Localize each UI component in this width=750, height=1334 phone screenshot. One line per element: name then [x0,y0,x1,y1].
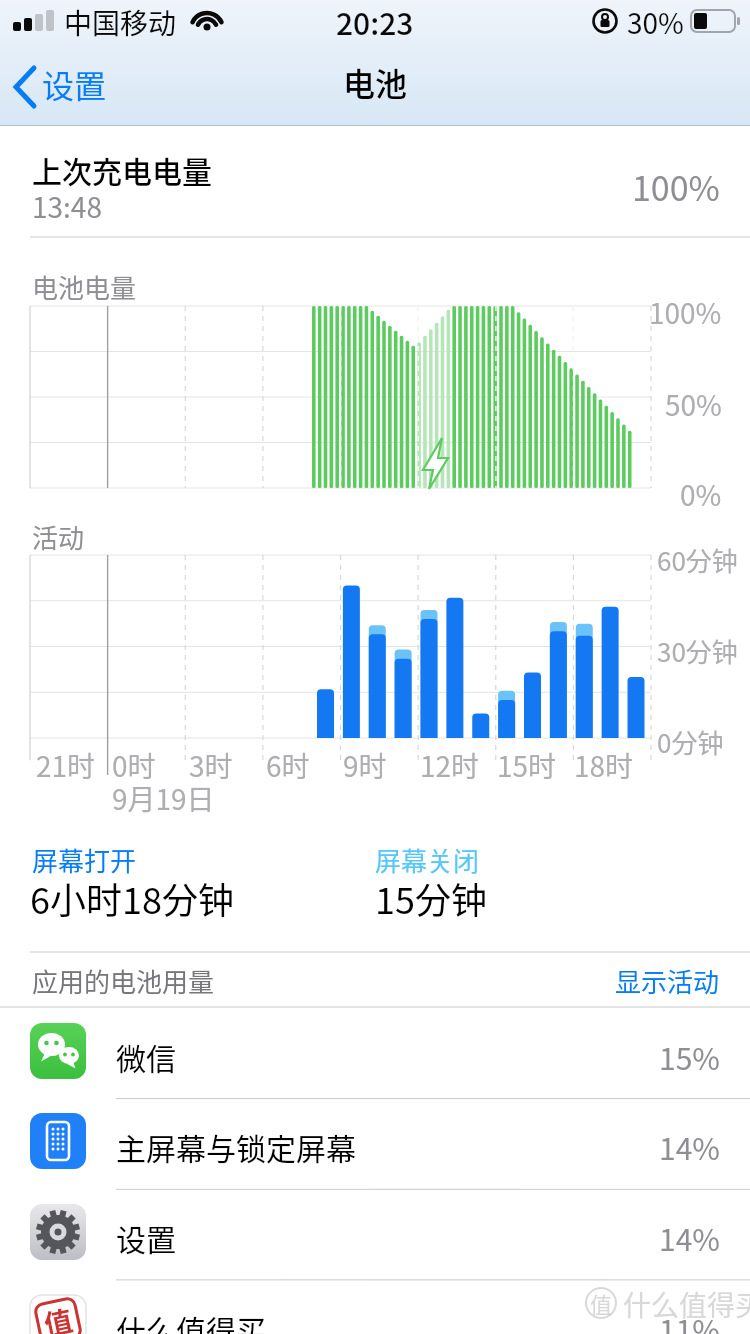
staticText: 什么值得买 [116,1307,266,1334]
button[interactable]: 值 [0,1280,750,1334]
button[interactable]: 设置 [42,61,107,107]
staticText: 12时 [420,745,480,786]
staticText: 18时 [574,745,634,786]
staticText: 100% [632,162,720,211]
staticText: 设置 [42,61,107,107]
staticText: 100% [649,292,722,333]
staticText: 14% [659,1125,720,1168]
staticText: 30分钟 [657,632,738,670]
staticText: 0分钟 [657,723,724,761]
staticText: 电池 [343,59,408,105]
staticText: 0时 [112,745,156,786]
staticText: 15分钟 [375,872,487,924]
staticText: 微信 [116,1035,176,1078]
staticText: 30% [627,2,684,43]
staticText: 50% [665,384,722,425]
staticText: 13:48 [32,186,102,227]
staticText: 14% [659,1216,720,1259]
staticText: 设置 [116,1216,176,1259]
button[interactable]: 屏幕打开 [0,840,375,950]
staticText: 主屏幕与锁定屏幕 [116,1125,356,1168]
button[interactable]: 主屏幕与锁定屏幕 [0,1098,750,1188]
button[interactable]: 屏幕关闭 [375,840,750,950]
staticText: 中国移动 [64,2,177,43]
staticText: 20:23 [336,0,414,43]
staticText: 15% [659,1035,720,1078]
button[interactable]: 微信 [0,1008,750,1098]
staticText: 9时 [343,745,387,786]
staticText: 15时 [497,745,557,786]
staticText: 9月19日 [112,778,215,819]
staticText: 屏幕打开 [32,841,137,879]
staticText: 6时 [266,745,310,786]
staticText: 60分钟 [657,541,738,579]
staticText: 21时 [36,745,96,786]
staticText: 上次充电电量 [32,148,212,191]
staticText: 6小时18分钟 [30,872,234,924]
staticText: 3时 [189,745,233,786]
staticText: 值 [590,1287,613,1319]
staticText: 屏幕关闭 [375,841,480,879]
button[interactable]: 设置 [0,1189,750,1279]
staticText: 值 [40,1298,77,1334]
staticText: 活动 [32,518,85,556]
staticText: 应用的电池用量 [32,962,215,1000]
button[interactable]: 显示活动 [615,962,720,1000]
staticText: 0% [680,474,722,515]
staticText: 电池电量 [32,268,137,306]
staticText: 什么值得买 [623,1284,750,1325]
staticText: 11% [659,1307,720,1334]
